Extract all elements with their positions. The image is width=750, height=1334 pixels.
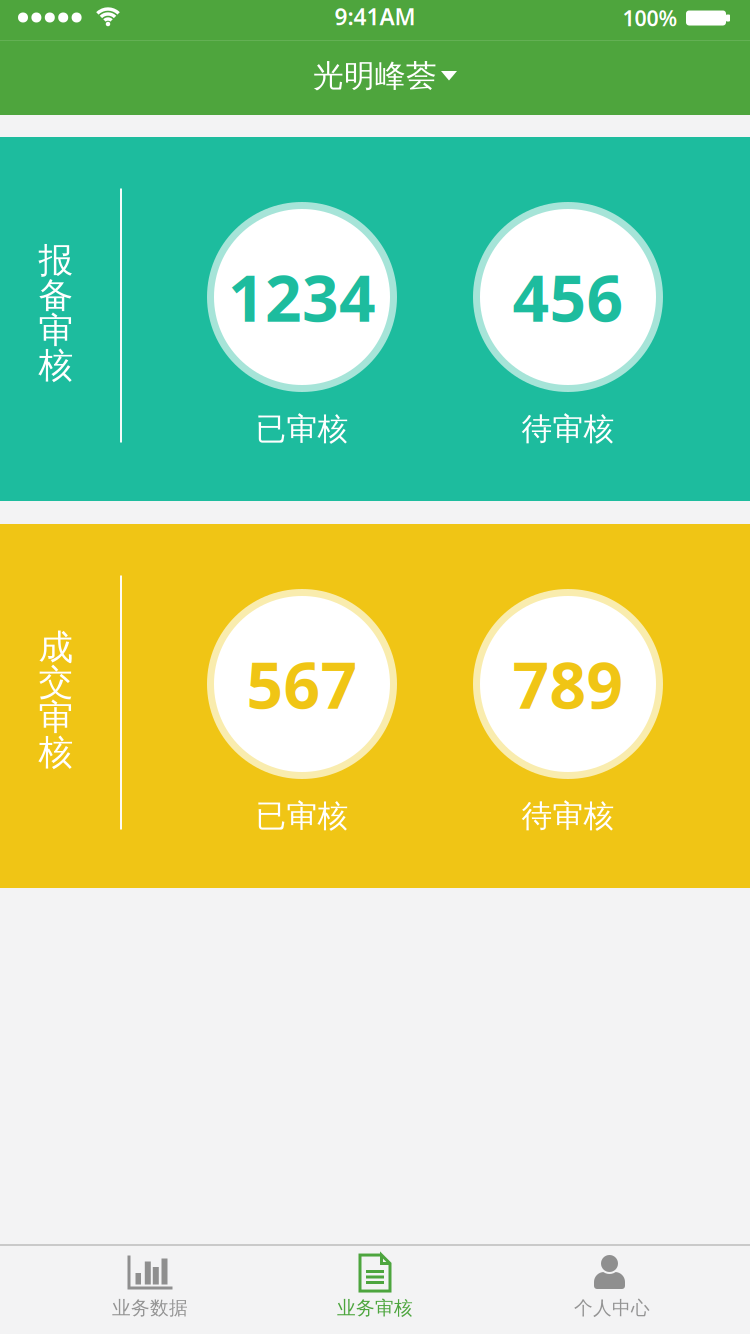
staticText: 100% — [622, 4, 677, 32]
button[interactable]: 业务审核 — [315, 1246, 435, 1334]
button[interactable]: 456 — [468, 187, 668, 457]
button[interactable]: 1234 — [202, 187, 402, 457]
staticText: 核 — [38, 731, 73, 774]
staticText: 456 — [512, 254, 623, 339]
staticText: 成 — [38, 626, 73, 669]
staticText: 已审核 — [255, 410, 348, 448]
staticText: 业务审核 — [337, 1296, 413, 1319]
button[interactable]: 789 — [468, 574, 668, 844]
staticText: 789 — [512, 641, 623, 726]
staticText: 已审核 — [255, 797, 348, 835]
button[interactable]: 个人中心 — [552, 1246, 672, 1334]
staticText: 核 — [38, 344, 73, 387]
staticText: 备 — [38, 274, 73, 317]
staticText: 待审核 — [521, 797, 614, 835]
staticText: 交 — [38, 661, 73, 704]
staticText: 567 — [246, 641, 357, 726]
staticText: 报 — [38, 239, 73, 282]
button[interactable]: 567 — [202, 574, 402, 844]
staticText: 待审核 — [521, 410, 614, 448]
staticText: 个人中心 — [574, 1296, 650, 1319]
button[interactable]: 光明峰荟 — [275, 40, 475, 115]
staticText: 9:41AM — [334, 1, 415, 31]
staticText: 光明峰荟 — [313, 57, 437, 95]
button[interactable]: 业务数据 — [90, 1246, 210, 1334]
staticText: 1234 — [228, 254, 376, 339]
staticText: 业务数据 — [112, 1296, 188, 1319]
staticText: 审 — [38, 696, 73, 739]
staticText: 审 — [38, 309, 73, 352]
